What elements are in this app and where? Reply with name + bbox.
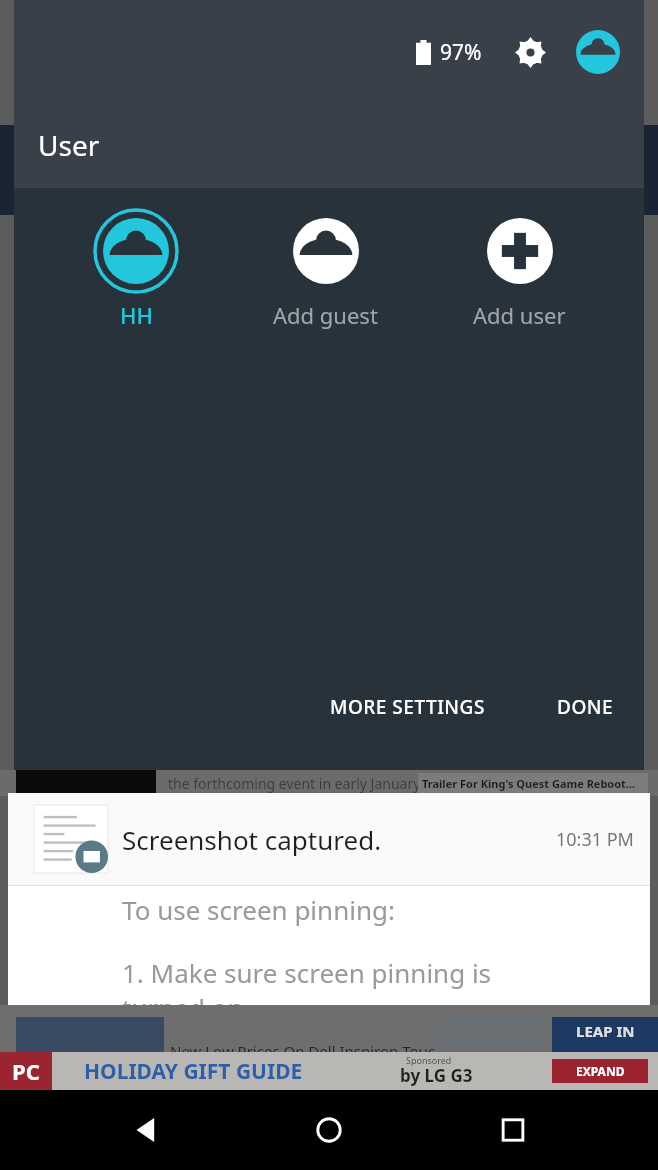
button[interactable]: DONE bbox=[541, 682, 630, 732]
staticText: turned on. bbox=[122, 990, 251, 1005]
staticText: HH bbox=[120, 300, 153, 330]
staticText: User bbox=[38, 126, 100, 164]
staticText: 10:31 PM bbox=[556, 827, 634, 852]
staticText: EXPAND bbox=[576, 1063, 625, 1079]
staticText: by LG G3 bbox=[400, 1064, 473, 1087]
staticText: 1. Make sure screen pinning is bbox=[122, 955, 492, 990]
button[interactable]: Back bbox=[108, 1092, 184, 1168]
staticText: HOLIDAY GIFT GUIDE bbox=[84, 1057, 303, 1086]
staticText: Sponsored bbox=[406, 1054, 452, 1066]
staticText: Screenshot captured. bbox=[122, 822, 382, 857]
staticText: Trailer For King's Quest Game Reboot... bbox=[422, 776, 636, 791]
button[interactable]: Screenshot captured. bbox=[8, 793, 650, 1005]
button[interactable]: HH bbox=[77, 204, 195, 334]
staticText: New Low Prices On Dell Inspiron Touchscr… bbox=[170, 1041, 491, 1061]
button[interactable]: Current user bbox=[576, 30, 620, 74]
button[interactable]: Add guest bbox=[257, 204, 394, 334]
staticText: 97% bbox=[440, 38, 482, 67]
staticText: LEAP IN bbox=[576, 1021, 635, 1041]
button[interactable]: Settings bbox=[510, 32, 550, 72]
staticText: MORE SETTINGS bbox=[330, 694, 485, 720]
staticText: To use screen pinning: bbox=[122, 892, 395, 927]
button[interactable]: Home bbox=[291, 1092, 367, 1168]
button[interactable]: MORE SETTINGS bbox=[314, 682, 501, 732]
staticText: Add guest bbox=[273, 300, 378, 330]
staticText: DONE bbox=[557, 694, 614, 720]
staticText: the forthcoming event in early January w… bbox=[168, 774, 548, 793]
staticText: Add user bbox=[473, 300, 566, 330]
button[interactable]: Recents bbox=[475, 1092, 551, 1168]
button[interactable]: Add user bbox=[457, 204, 582, 334]
staticText: PC bbox=[12, 1056, 40, 1086]
